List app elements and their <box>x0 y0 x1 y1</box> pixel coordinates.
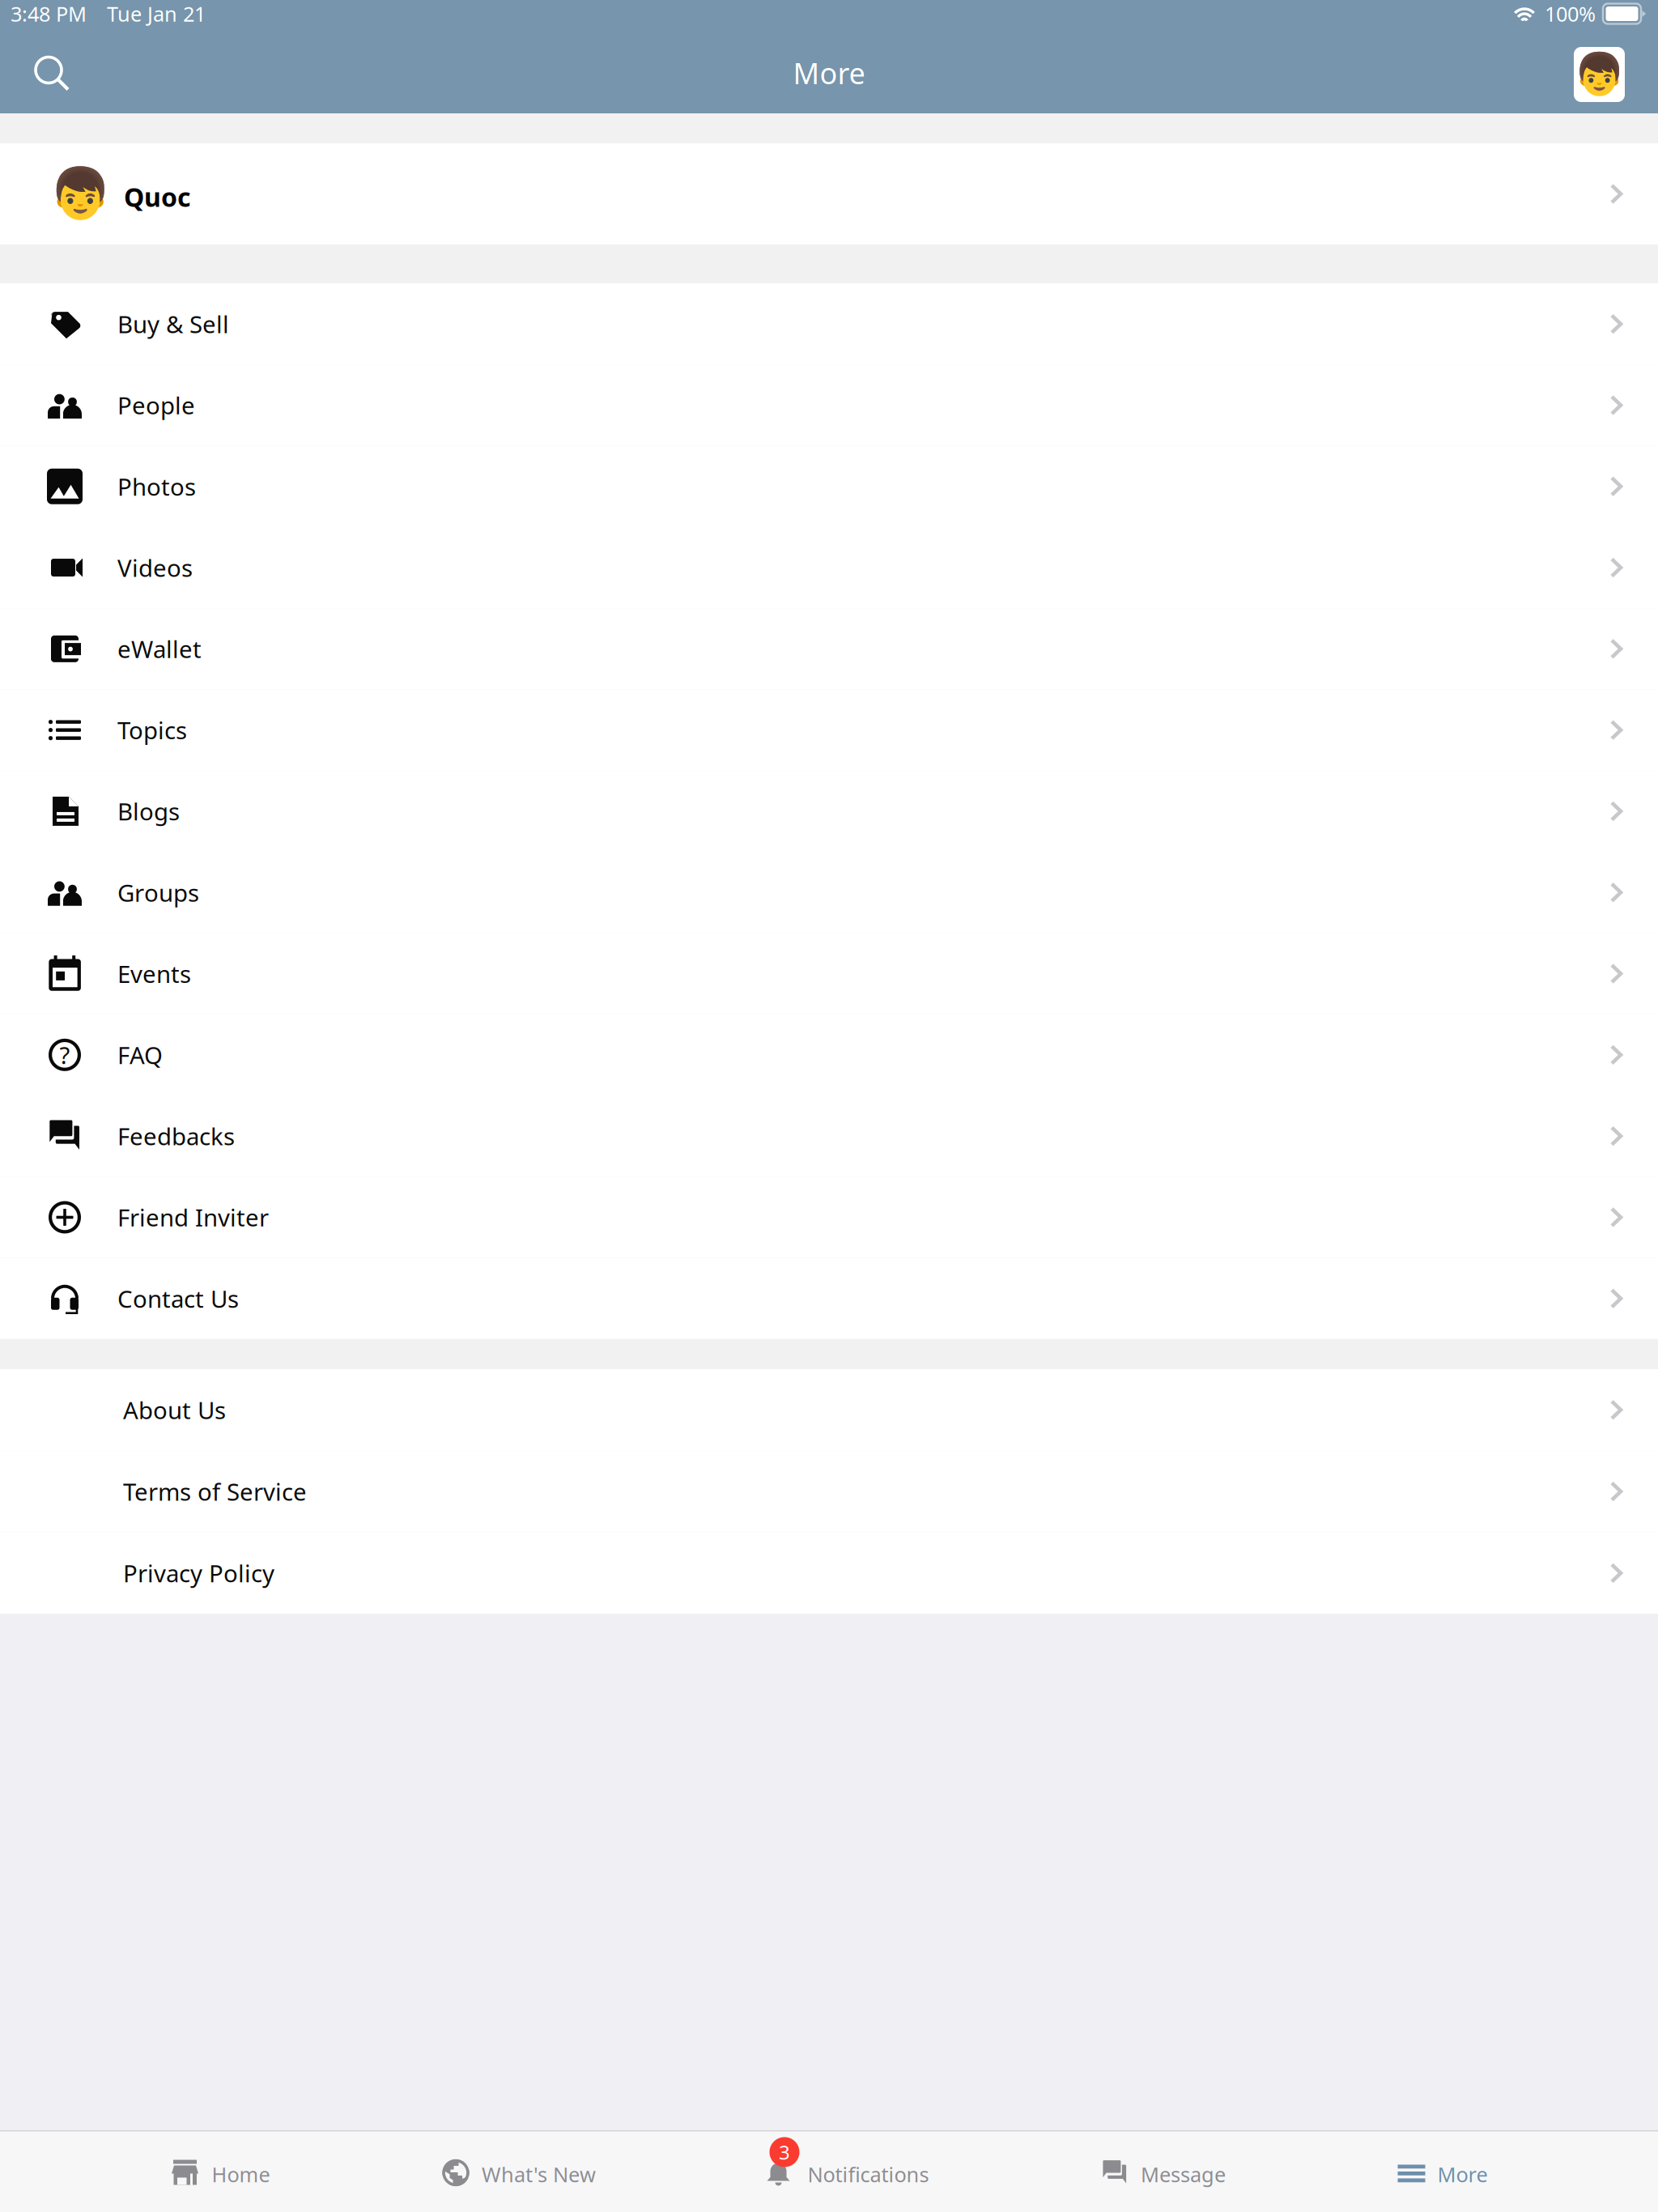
staticText: Groups <box>117 877 199 908</box>
button[interactable]: Blogs <box>0 771 1658 852</box>
button[interactable]: Videos <box>0 527 1658 608</box>
button[interactable]: 👦 <box>0 143 1658 245</box>
staticText: About Us <box>123 1394 226 1426</box>
staticText: Notifications <box>808 2161 929 2188</box>
button[interactable]: eWallet <box>0 608 1658 689</box>
button[interactable]: About Us <box>0 1369 1658 1451</box>
staticText: Photos <box>117 471 196 502</box>
staticText: Quoc <box>124 180 191 214</box>
button[interactable]: ? <box>0 1014 1658 1095</box>
staticText: Terms of Service <box>123 1476 307 1507</box>
staticText: 👦 <box>49 166 111 222</box>
staticText: Contact Us <box>117 1283 239 1314</box>
button[interactable]: Privacy Policy <box>0 1532 1658 1614</box>
button[interactable]: More <box>1396 2131 1488 2190</box>
button[interactable]: 3 <box>766 2131 929 2190</box>
button[interactable]: Search <box>0 42 84 113</box>
button[interactable]: Buy & Sell <box>0 283 1658 365</box>
staticText: Tue Jan 21 <box>107 0 206 27</box>
staticText: eWallet <box>117 633 202 665</box>
staticText: Videos <box>117 552 193 583</box>
staticText: People <box>117 389 195 421</box>
staticText: 3:48 PM <box>11 0 87 27</box>
staticText: Message <box>1141 2161 1226 2188</box>
button[interactable]: Message <box>1099 2131 1226 2190</box>
staticText: 3 <box>779 2139 790 2165</box>
button[interactable]: Photos <box>0 446 1658 527</box>
button[interactable]: Contact Us <box>0 1258 1658 1339</box>
staticText: What's New <box>482 2161 596 2188</box>
staticText: 👦 <box>1574 51 1625 98</box>
staticText: Buy & Sell <box>117 308 229 340</box>
button[interactable]: Topics <box>0 689 1658 771</box>
staticText: ? <box>60 1039 70 1071</box>
staticText: Topics <box>117 714 187 746</box>
button[interactable]: Terms of Service <box>0 1451 1658 1532</box>
button[interactable]: People <box>0 365 1658 446</box>
staticText: FAQ <box>117 1039 163 1071</box>
staticText: Friend Inviter <box>117 1202 269 1233</box>
staticText: More <box>1437 2161 1488 2188</box>
button[interactable]: Friend Inviter <box>0 1177 1658 1258</box>
staticText: More <box>793 54 865 92</box>
staticText: Feedbacks <box>117 1120 235 1152</box>
staticText: Home <box>212 2161 270 2188</box>
staticText: Blogs <box>117 795 180 827</box>
button[interactable]: Events <box>0 933 1658 1014</box>
staticText: 100% <box>1545 0 1596 27</box>
staticText: Privacy Policy <box>123 1557 274 1589</box>
button[interactable]: Profile <box>1574 42 1658 113</box>
button[interactable]: What's New <box>440 2131 596 2190</box>
button[interactable]: Feedbacks <box>0 1095 1658 1177</box>
button[interactable]: Home <box>170 2131 270 2190</box>
button[interactable]: Groups <box>0 852 1658 933</box>
staticText: Events <box>117 958 191 989</box>
